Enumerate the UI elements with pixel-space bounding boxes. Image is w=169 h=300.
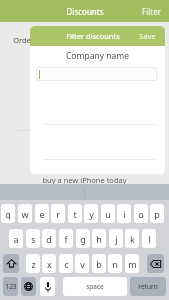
staticText: w	[21, 208, 29, 220]
button[interactable]: r	[51, 204, 65, 223]
button[interactable]: return	[130, 277, 166, 296]
button[interactable]: y	[84, 204, 98, 223]
staticText: u	[105, 208, 111, 220]
staticText: o	[138, 208, 144, 220]
staticText: e	[39, 208, 45, 220]
staticText: Discounts	[66, 6, 104, 17]
button[interactable]: s	[26, 229, 40, 248]
staticText: v	[80, 258, 85, 270]
staticText: m	[128, 258, 137, 270]
staticText: buy a new iPhone today	[42, 175, 127, 185]
button[interactable]: space	[63, 277, 127, 296]
button[interactable]: p	[150, 204, 164, 223]
staticText: j	[115, 233, 118, 245]
staticText: s	[31, 233, 36, 245]
staticText: z	[31, 258, 36, 270]
button[interactable]: k	[125, 229, 139, 248]
button[interactable]: Next keyboard	[21, 277, 36, 296]
staticText: l	[148, 233, 151, 245]
button[interactable]: a	[9, 229, 23, 248]
staticText: q	[5, 208, 11, 220]
staticText: Filter	[142, 6, 161, 17]
staticText: g	[80, 233, 86, 245]
button[interactable]: Backspace	[147, 254, 164, 273]
staticText: space	[86, 282, 104, 291]
button[interactable]: Shift	[3, 254, 19, 273]
staticText: a	[13, 233, 19, 245]
button[interactable]: c	[59, 254, 73, 273]
button[interactable]: u	[101, 204, 115, 223]
staticText: x	[47, 258, 52, 270]
staticText: d	[46, 233, 52, 245]
staticText: i	[123, 208, 126, 220]
staticText: p	[154, 208, 160, 220]
staticText: k	[130, 233, 135, 245]
button[interactable]: i	[117, 204, 131, 223]
staticText: Orde	[13, 35, 31, 45]
button[interactable]: q	[1, 204, 15, 223]
button[interactable]: l	[142, 229, 156, 248]
staticText: Filter discounts	[66, 31, 120, 41]
staticText: y	[89, 208, 94, 220]
button[interactable]: t	[68, 204, 82, 223]
staticText: n	[112, 258, 118, 270]
button[interactable]: j	[109, 229, 123, 248]
staticText: Company name	[30, 50, 165, 62]
staticText: return	[138, 282, 158, 291]
button[interactable]: d	[42, 229, 56, 248]
button[interactable]: g	[76, 229, 90, 248]
button[interactable]: m	[125, 254, 139, 273]
button[interactable]: h	[92, 229, 106, 248]
staticText: t	[73, 208, 77, 220]
button[interactable]: e	[35, 204, 49, 223]
staticText: r	[56, 208, 60, 220]
button[interactable]: Filter	[142, 6, 161, 17]
button[interactable]: f	[59, 229, 73, 248]
staticText: f	[64, 233, 68, 245]
button[interactable]: Save	[139, 31, 156, 41]
button[interactable]: b	[92, 254, 106, 273]
staticText: h	[96, 233, 102, 245]
button[interactable]: v	[75, 254, 89, 273]
button[interactable]: n	[108, 254, 122, 273]
button[interactable]: Dictation	[40, 277, 55, 296]
button[interactable]: z	[26, 254, 40, 273]
button[interactable]	[36, 67, 157, 81]
staticText: b	[96, 258, 102, 270]
staticText: Save	[139, 31, 156, 41]
button[interactable]: w	[18, 204, 32, 223]
staticText: c	[64, 258, 69, 270]
button[interactable]: o	[134, 204, 148, 223]
staticText: 123	[5, 282, 17, 291]
button[interactable]: 123	[3, 277, 18, 296]
button[interactable]: x	[42, 254, 56, 273]
